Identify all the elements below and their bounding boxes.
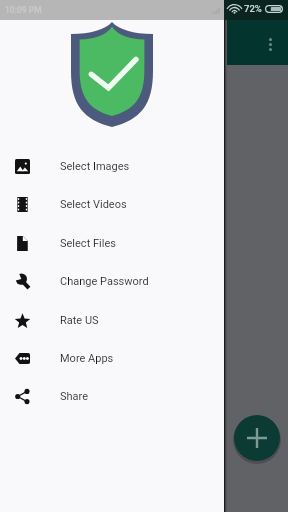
button[interactable]: More Apps — [0, 338, 224, 378]
button[interactable]: Add — [234, 415, 280, 461]
button[interactable]: Select Videos — [0, 184, 224, 224]
button[interactable]: Share — [0, 376, 224, 416]
staticText: Rate US — [60, 314, 99, 327]
staticText: 10:09 PM — [5, 5, 42, 15]
staticText: 72% — [244, 3, 262, 14]
staticText: Change Password — [60, 275, 149, 288]
staticText: Select Files — [60, 237, 116, 250]
button[interactable]: Select Files — [0, 223, 224, 263]
button[interactable]: More options — [259, 27, 281, 61]
staticText: Select Videos — [60, 198, 127, 211]
staticText: Share — [60, 390, 89, 403]
button[interactable]: Change Password — [0, 261, 224, 301]
staticText: More Apps — [60, 352, 114, 365]
staticText: Select Images — [60, 160, 130, 173]
button[interactable]: Rate US — [0, 300, 224, 340]
button[interactable]: Select Images — [0, 146, 224, 186]
